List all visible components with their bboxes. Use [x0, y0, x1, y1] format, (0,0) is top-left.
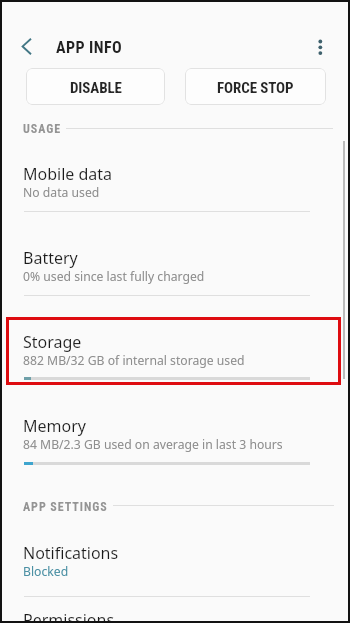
staticText: 0% used since last fully charged	[23, 268, 205, 285]
button[interactable]: FORCE STOP	[185, 68, 326, 105]
button[interactable]: Battery	[0, 233, 350, 295]
button[interactable]: Notifications	[0, 528, 350, 590]
staticText: APP INFO	[56, 38, 123, 57]
staticText: USAGE	[23, 122, 62, 136]
button[interactable]: Storage	[0, 317, 350, 379]
staticText: DISABLE	[70, 79, 122, 97]
button[interactable]: Memory	[0, 401, 350, 463]
staticText: Notifications	[23, 542, 119, 564]
staticText: No data used	[23, 184, 100, 201]
staticText: FORCE STOP	[217, 79, 294, 97]
staticText: Battery	[23, 247, 78, 269]
staticText: APP SETTINGS	[23, 500, 108, 514]
button[interactable]: More options	[310, 34, 332, 56]
staticText: Permissions	[23, 609, 115, 623]
button[interactable]: Mobile data	[0, 149, 350, 211]
staticText: 84 MB/2.3 GB used on average in last 3 h…	[23, 436, 283, 453]
staticText: 882 MB/32 GB of internal storage used	[23, 352, 245, 369]
staticText: Memory	[23, 415, 86, 437]
staticText: Storage	[23, 331, 82, 353]
staticText: Blocked	[23, 563, 69, 580]
staticText: Mobile data	[23, 163, 113, 185]
button[interactable]: Back	[14, 34, 39, 59]
button[interactable]: DISABLE	[26, 68, 165, 105]
button[interactable]: Permissions	[0, 595, 350, 623]
